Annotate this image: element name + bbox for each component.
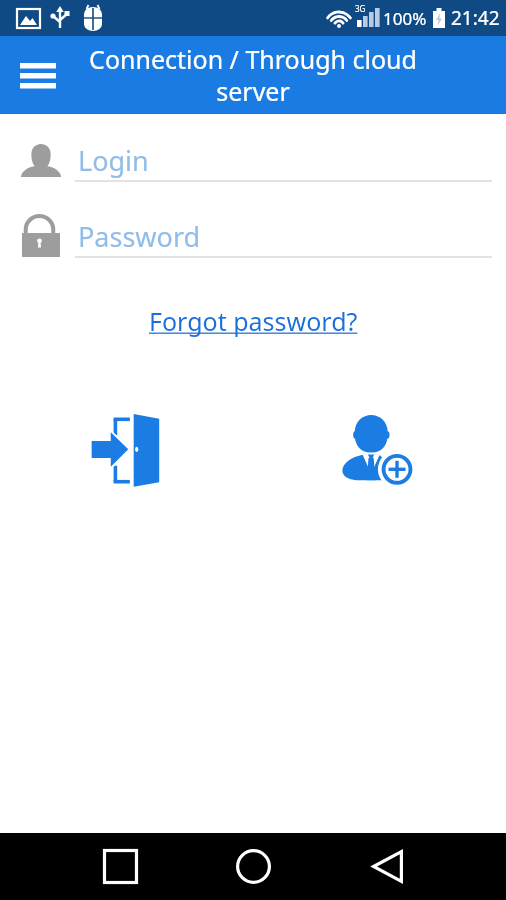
button[interactable]: Login field xyxy=(0,132,506,184)
staticText: Forgot password? xyxy=(149,304,358,338)
button[interactable]: Open navigation menu xyxy=(12,49,64,101)
staticText: 21:42 xyxy=(451,5,500,31)
button[interactable]: Recent apps xyxy=(92,833,148,900)
button[interactable]: Home xyxy=(225,833,281,900)
button[interactable]: Back xyxy=(359,833,415,900)
staticText: 3G xyxy=(355,3,366,14)
button[interactable]: Register new user xyxy=(334,398,426,498)
button[interactable]: Log in xyxy=(80,398,173,501)
staticText: 100% xyxy=(383,7,427,30)
staticText: Password xyxy=(78,218,201,255)
button[interactable]: Forgot password? xyxy=(143,300,364,342)
staticText: Login xyxy=(78,142,149,179)
button[interactable]: Password field xyxy=(0,208,506,260)
staticText: Connection / Through cloud server xyxy=(78,42,428,108)
